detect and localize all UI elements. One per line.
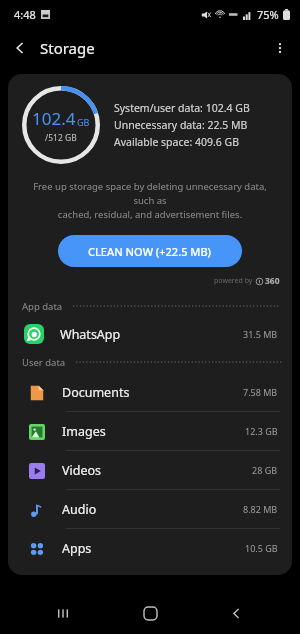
staticText: Documents: [62, 384, 130, 401]
staticText: 31.5 MB: [243, 328, 278, 340]
staticText: 28 GB: [252, 464, 278, 476]
button[interactable]: Videos: [8, 451, 292, 489]
staticText: Audio: [62, 501, 97, 518]
staticText: 75%: [257, 7, 279, 22]
button[interactable]: WhatsApp: [8, 317, 292, 351]
staticText: WhatsApp: [60, 326, 121, 343]
staticText: 102.4: [32, 107, 76, 130]
staticText: 10.5 GB: [245, 542, 278, 554]
button[interactable]: Images: [8, 412, 292, 450]
staticText: Apps: [62, 540, 92, 557]
button[interactable]: Recents: [42, 592, 86, 634]
staticText: /512 GB: [45, 132, 77, 144]
staticText: 7.58 MB: [243, 386, 278, 398]
button[interactable]: More options: [260, 28, 300, 68]
staticText: Available space: 409.6 GB: [114, 135, 239, 149]
staticText: Storage: [40, 38, 95, 58]
staticText: GB: [77, 116, 90, 128]
staticText: Images: [62, 423, 106, 440]
staticText: System/user data: 102.4 GB: [114, 101, 250, 115]
button[interactable]: Home: [128, 592, 172, 634]
staticText: 8.82 MB: [243, 503, 278, 515]
button[interactable]: Back: [0, 28, 40, 68]
staticText: App data: [22, 300, 63, 313]
staticText: powered by: [214, 276, 253, 286]
staticText: Videos: [62, 462, 102, 479]
button[interactable]: Audio: [8, 490, 292, 528]
staticText: Unnecessary data: 22.5 MB: [114, 118, 248, 132]
button[interactable]: Documents: [8, 373, 292, 411]
staticText: 4:48: [14, 7, 36, 22]
staticText: Free up storage space by deleting unnece…: [22, 180, 278, 221]
button[interactable]: Apps: [8, 529, 292, 567]
button[interactable]: Back: [214, 592, 258, 634]
staticText: User data: [22, 356, 66, 369]
staticText: 12.3 GB: [245, 425, 278, 437]
staticText: CLEAN NOW (+22.5 MB): [88, 244, 212, 259]
staticText: 360: [265, 275, 280, 287]
button[interactable]: CLEAN NOW (+22.5 MB): [58, 235, 242, 267]
